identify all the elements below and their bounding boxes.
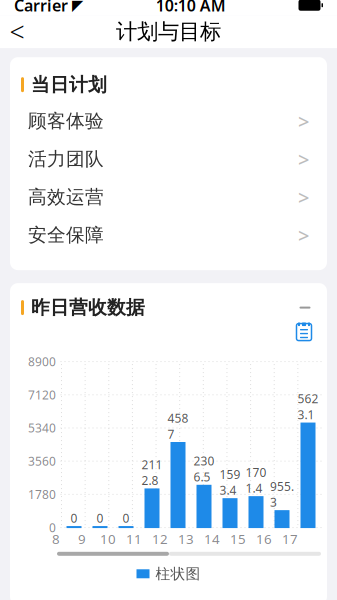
staticText: 0: [122, 510, 129, 526]
staticText: 3560: [28, 453, 56, 469]
staticText: >: [298, 222, 309, 248]
staticText: 10: [100, 530, 116, 548]
staticText: 2112.8: [141, 457, 162, 488]
staticText: 顾客体验: [28, 110, 104, 133]
button[interactable]: Back: [0, 15, 34, 48]
staticText: 7120: [28, 387, 56, 403]
staticText: 5340: [28, 420, 56, 436]
staticText: 安全保障: [28, 224, 104, 247]
staticText: 5623.1: [297, 391, 318, 423]
staticText: 当日计划: [31, 73, 107, 96]
staticText: 计划与目标: [116, 19, 221, 45]
staticText: >: [298, 184, 309, 210]
staticText: 高效运营: [28, 186, 104, 209]
staticText: 0: [49, 520, 56, 535]
staticText: 14: [204, 530, 220, 548]
staticText: 8900: [28, 354, 56, 369]
button[interactable]: 安全保障: [10, 216, 327, 254]
button[interactable]: 顾客体验: [10, 102, 327, 140]
staticText: 4587: [167, 410, 188, 442]
staticText: ◤: [72, 0, 83, 14]
staticText: 0: [96, 510, 103, 526]
staticText: 1701.4: [245, 464, 266, 496]
staticText: 1780: [28, 486, 56, 502]
staticText: 17: [282, 530, 298, 548]
button[interactable]: Report: [293, 321, 315, 343]
staticText: >: [298, 146, 309, 172]
staticText: 1593.4: [219, 466, 240, 498]
staticText: 0: [70, 510, 77, 526]
staticText: 12: [152, 530, 168, 548]
staticText: 9: [78, 530, 86, 548]
button[interactable]: 活力团队: [10, 140, 327, 178]
staticText: 11: [126, 530, 142, 548]
staticText: 2306.5: [193, 453, 214, 485]
staticText: 8: [52, 530, 60, 548]
button[interactable]: 高效运营: [10, 178, 327, 216]
staticText: 13: [178, 530, 194, 548]
staticText: 10:10 AM: [156, 0, 226, 16]
staticText: >: [298, 108, 309, 134]
staticText: 16: [256, 530, 272, 548]
staticText: 活力团队: [28, 148, 104, 171]
staticText: 15: [230, 530, 246, 548]
staticText: Carrier: [14, 0, 68, 16]
button[interactable]: Collapse: [294, 297, 316, 319]
staticText: 柱状图: [155, 565, 200, 583]
staticText: <: [9, 14, 24, 49]
staticText: 955.3: [270, 478, 294, 510]
staticText: 昨日营收数据: [31, 296, 145, 319]
